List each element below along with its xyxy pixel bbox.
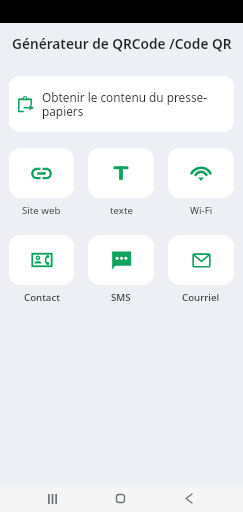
staticText: Wi-Fi <box>190 204 213 217</box>
button[interactable]: Contact <box>9 235 74 285</box>
staticText: Courriel <box>182 291 220 304</box>
staticText: SMS <box>111 291 131 304</box>
staticText: Site web <box>22 204 61 217</box>
button[interactable]: Back <box>168 485 209 512</box>
button[interactable]: Recent apps <box>31 485 73 512</box>
staticText: texte <box>110 204 133 217</box>
button[interactable]: Obtenir le contenu du presse-papiers <box>9 76 234 132</box>
button[interactable]: SMS <box>88 235 154 285</box>
button[interactable]: Wi-Fi <box>168 148 234 198</box>
staticText: Générateur de QRCode /Code QR <box>12 34 232 53</box>
button[interactable]: Home <box>100 485 141 512</box>
staticText: Contact <box>24 291 60 304</box>
button[interactable]: texte <box>88 148 154 198</box>
button[interactable]: Courriel <box>168 235 234 285</box>
button[interactable]: Site web <box>9 148 74 198</box>
staticText: Obtenir le contenu du presse-papiers <box>42 89 234 120</box>
